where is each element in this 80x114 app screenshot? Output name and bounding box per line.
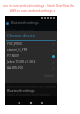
staticText: P7-N00? [7,54,20,58]
button[interactable]: xiaomi_h_YFR [7,47,55,53]
staticText: AA-BRLF00 [7,66,24,70]
staticText: Device not connected to any network [7,85,56,89]
button[interactable]: Home [29,101,33,105]
button[interactable]: AA-BRLF00 [7,65,55,71]
staticText: Visible to all nearby [7,29,35,33]
staticText: Choose device [7,33,36,39]
button[interactable]: Back [17,101,21,105]
button[interactable]: Jabra TOUR v1.38.3 [7,59,55,65]
staticText: ANR in com.android.settings x [10,9,56,13]
button[interactable]: Recents [40,101,44,105]
button[interactable]: PVZ-JFR00 [7,41,55,47]
staticText: Jabra TOUR v1.38.3 [7,60,36,64]
other: App icon [6,22,9,25]
staticText: PVZ-JFR00 [7,42,22,46]
staticText: Bluetooth settings [11,21,39,25]
staticText: Bluetooth settings [7,89,35,93]
button[interactable]: P7-N00? [7,53,55,59]
staticText: Tap to set up and connect device [7,93,50,97]
staticText: Cancel [44,74,54,78]
staticText: xiaomi_h_YFR [7,48,28,52]
staticText: anr in com.android.settings - Stack Over… [3,4,75,8]
button[interactable]: Cancel [44,74,54,78]
